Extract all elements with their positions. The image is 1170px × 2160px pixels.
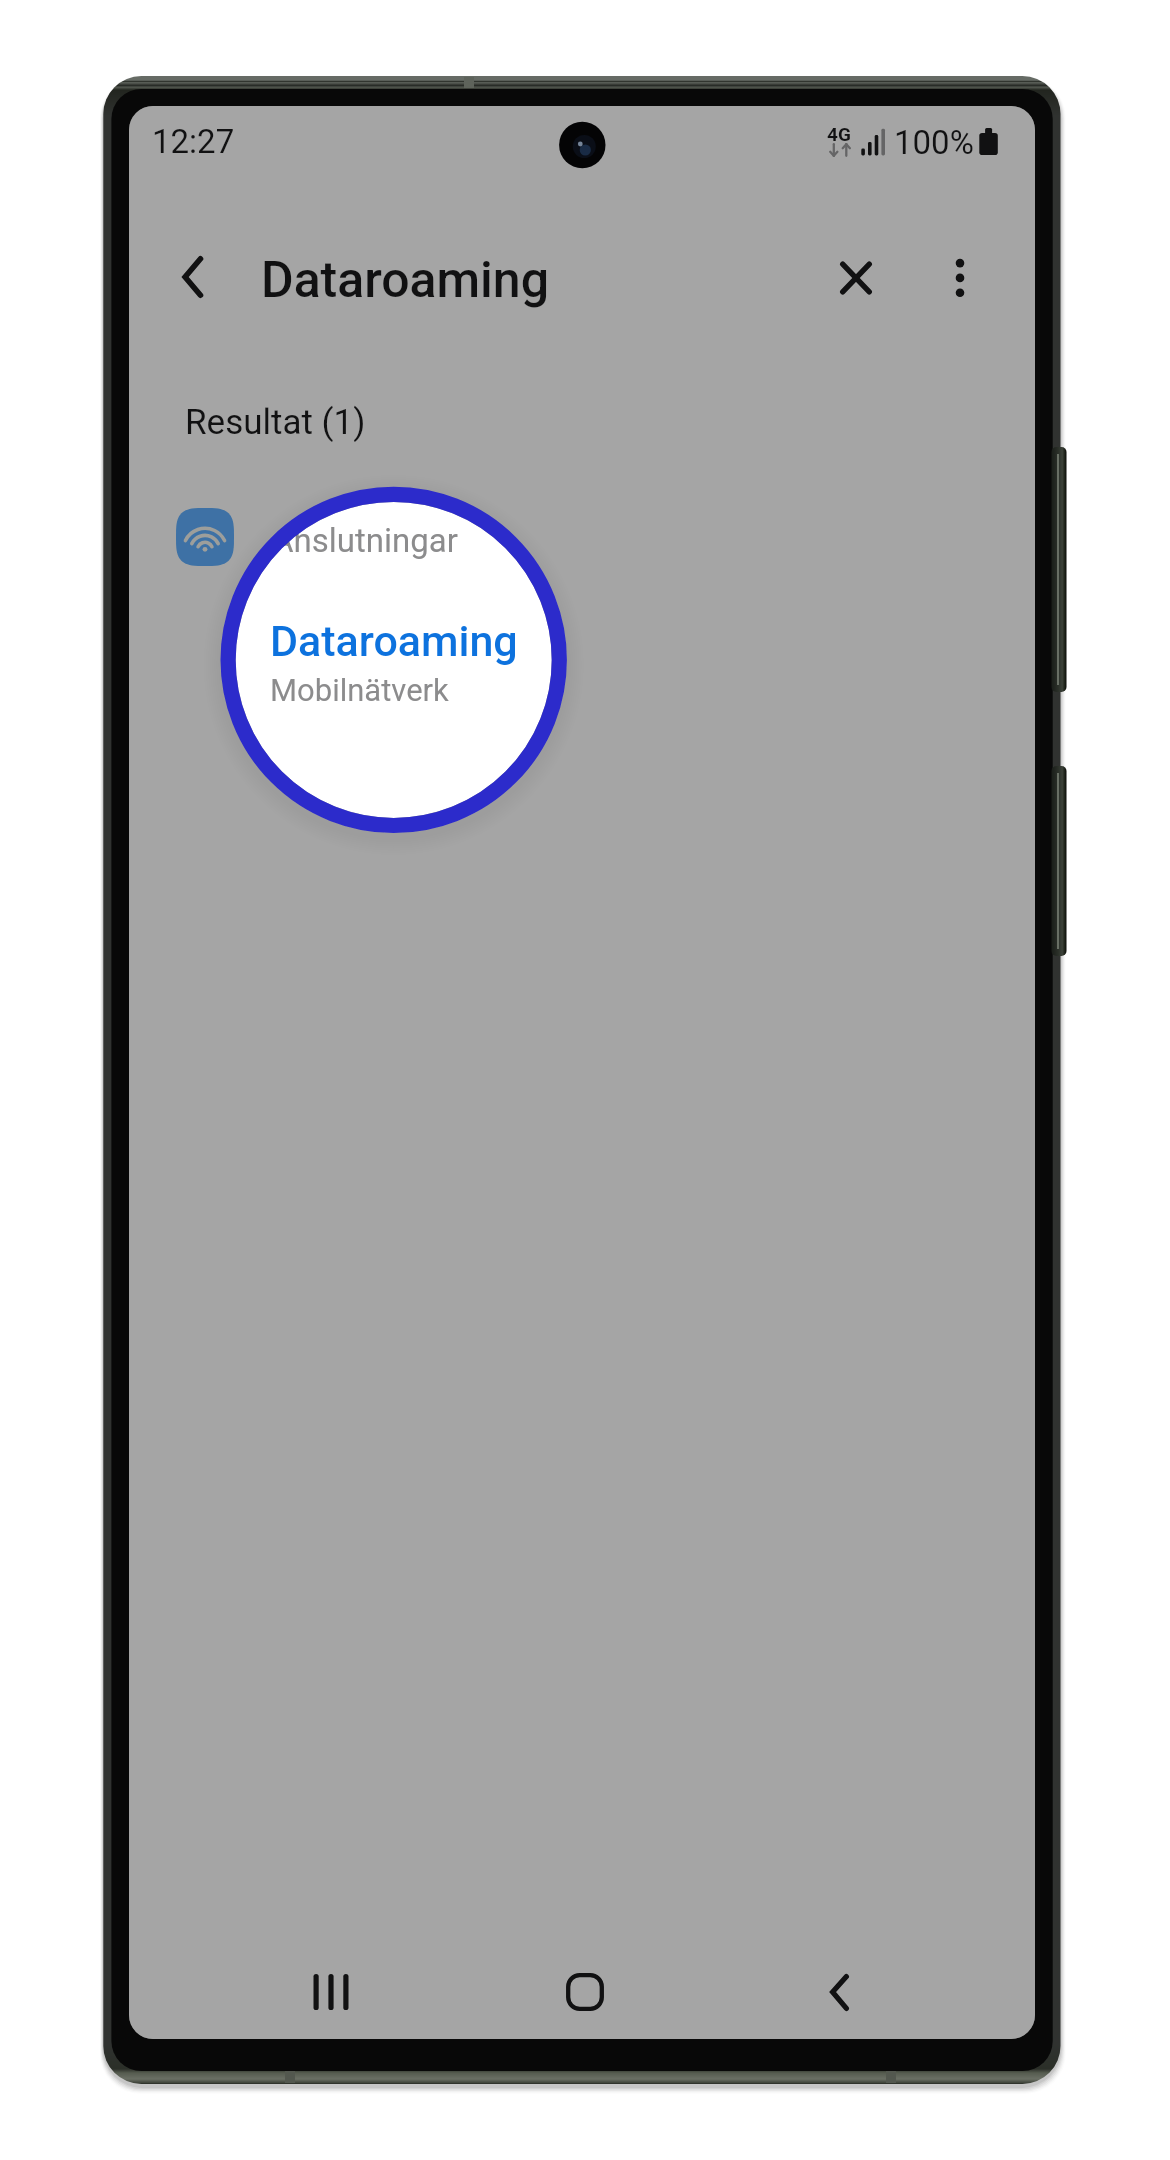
staticText: 100% (894, 123, 974, 162)
staticText: Resultat (1) (185, 402, 366, 443)
staticText: Dataroaming (270, 616, 518, 666)
button[interactable]: Anslutningar (129, 486, 1035, 726)
button[interactable]: Close (804, 226, 908, 330)
button[interactable]: Back (780, 1932, 900, 2039)
button[interactable]: Home (525, 1932, 645, 2039)
button[interactable]: More options (908, 226, 1012, 330)
staticText: 12:27 (152, 122, 235, 161)
staticText: Dataroaming (261, 251, 550, 310)
staticText: Anslutningar (272, 521, 458, 560)
staticText: Mobilnätverk (270, 672, 449, 708)
staticText: 4G (827, 123, 851, 145)
button[interactable]: Back (133, 227, 237, 331)
button[interactable]: Recent apps (270, 1932, 390, 2039)
